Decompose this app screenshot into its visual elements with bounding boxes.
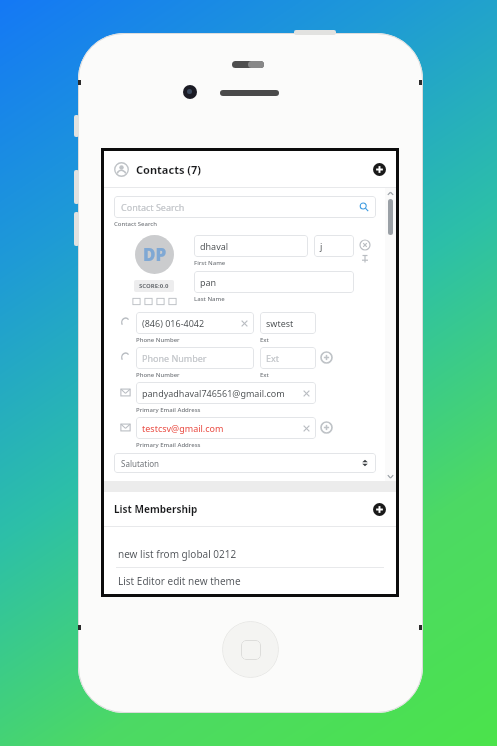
staticText: List Editor edit new theme bbox=[118, 574, 241, 588]
button[interactable]: Home bbox=[222, 621, 279, 678]
staticText: Primary Email Address bbox=[136, 441, 201, 449]
button[interactable]: Ext bbox=[260, 347, 316, 369]
staticText: new list from global 0212 bbox=[118, 547, 237, 561]
staticText: Contacts (7) bbox=[136, 162, 202, 177]
button[interactable]: Avatar bbox=[135, 235, 174, 274]
staticText: Ext bbox=[260, 371, 269, 379]
button[interactable]: Salutation bbox=[114, 453, 376, 473]
button[interactable]: pandyadhaval746561@gmail.com bbox=[136, 382, 316, 404]
staticText: DP bbox=[143, 243, 167, 266]
button[interactable]: pan bbox=[194, 271, 354, 293]
button[interactable]: Clear bbox=[302, 424, 311, 433]
staticText: First Name bbox=[194, 259, 226, 267]
staticText: j bbox=[320, 240, 323, 252]
staticText: Phone Number bbox=[136, 371, 180, 379]
staticText: Contact Search bbox=[114, 220, 158, 228]
staticText: (846) 016-4042 bbox=[142, 317, 205, 329]
button[interactable]: swtest bbox=[260, 312, 316, 334]
button[interactable]: (846) 016-4042 bbox=[136, 312, 254, 334]
button[interactable]: testcsv@gmail.com bbox=[136, 417, 316, 439]
button[interactable]: Add list bbox=[373, 503, 386, 516]
button[interactable]: j bbox=[314, 235, 354, 257]
button[interactable]: new list from global 0212 bbox=[104, 541, 396, 567]
button[interactable]: Remove bbox=[360, 240, 370, 250]
staticText: Salutation bbox=[121, 458, 159, 469]
button[interactable]: List Editor edit new theme bbox=[104, 568, 396, 594]
button[interactable]: Add email bbox=[321, 422, 332, 433]
button[interactable]: Add phone bbox=[321, 352, 332, 363]
staticText: pan bbox=[200, 276, 217, 288]
button[interactable]: List Membership bbox=[104, 492, 396, 526]
staticText: pandyadhaval746561@gmail.com bbox=[142, 387, 285, 399]
staticText: Last Name bbox=[194, 295, 225, 303]
staticText: Phone Number bbox=[142, 352, 207, 364]
button[interactable]: Action 0 bbox=[132, 297, 141, 306]
button[interactable]: Pin bbox=[360, 254, 370, 264]
button[interactable]: Action 3 bbox=[168, 297, 177, 306]
button[interactable]: Contact Search bbox=[114, 196, 376, 218]
button[interactable]: dhaval bbox=[194, 235, 308, 257]
staticText: Primary Email Address bbox=[136, 406, 201, 414]
button[interactable]: Action 1 bbox=[144, 297, 153, 306]
staticText: Contact Search bbox=[121, 201, 185, 213]
button[interactable]: Add contact bbox=[373, 163, 386, 176]
button[interactable]: Action 2 bbox=[156, 297, 165, 306]
staticText: testcsv@gmail.com bbox=[142, 422, 224, 434]
button[interactable]: Phone Number bbox=[136, 347, 254, 369]
staticText: List Membership bbox=[114, 502, 198, 516]
button[interactable]: Clear bbox=[302, 389, 311, 398]
button[interactable]: Clear bbox=[240, 319, 249, 328]
staticText: Ext bbox=[260, 336, 269, 344]
staticText: SCORE:0.0 bbox=[139, 282, 169, 290]
staticText: Phone Number bbox=[136, 336, 180, 344]
button[interactable]: Contacts (7) bbox=[104, 151, 396, 187]
staticText: Ext bbox=[266, 352, 280, 364]
staticText: swtest bbox=[266, 317, 294, 329]
staticText: dhaval bbox=[200, 240, 229, 252]
